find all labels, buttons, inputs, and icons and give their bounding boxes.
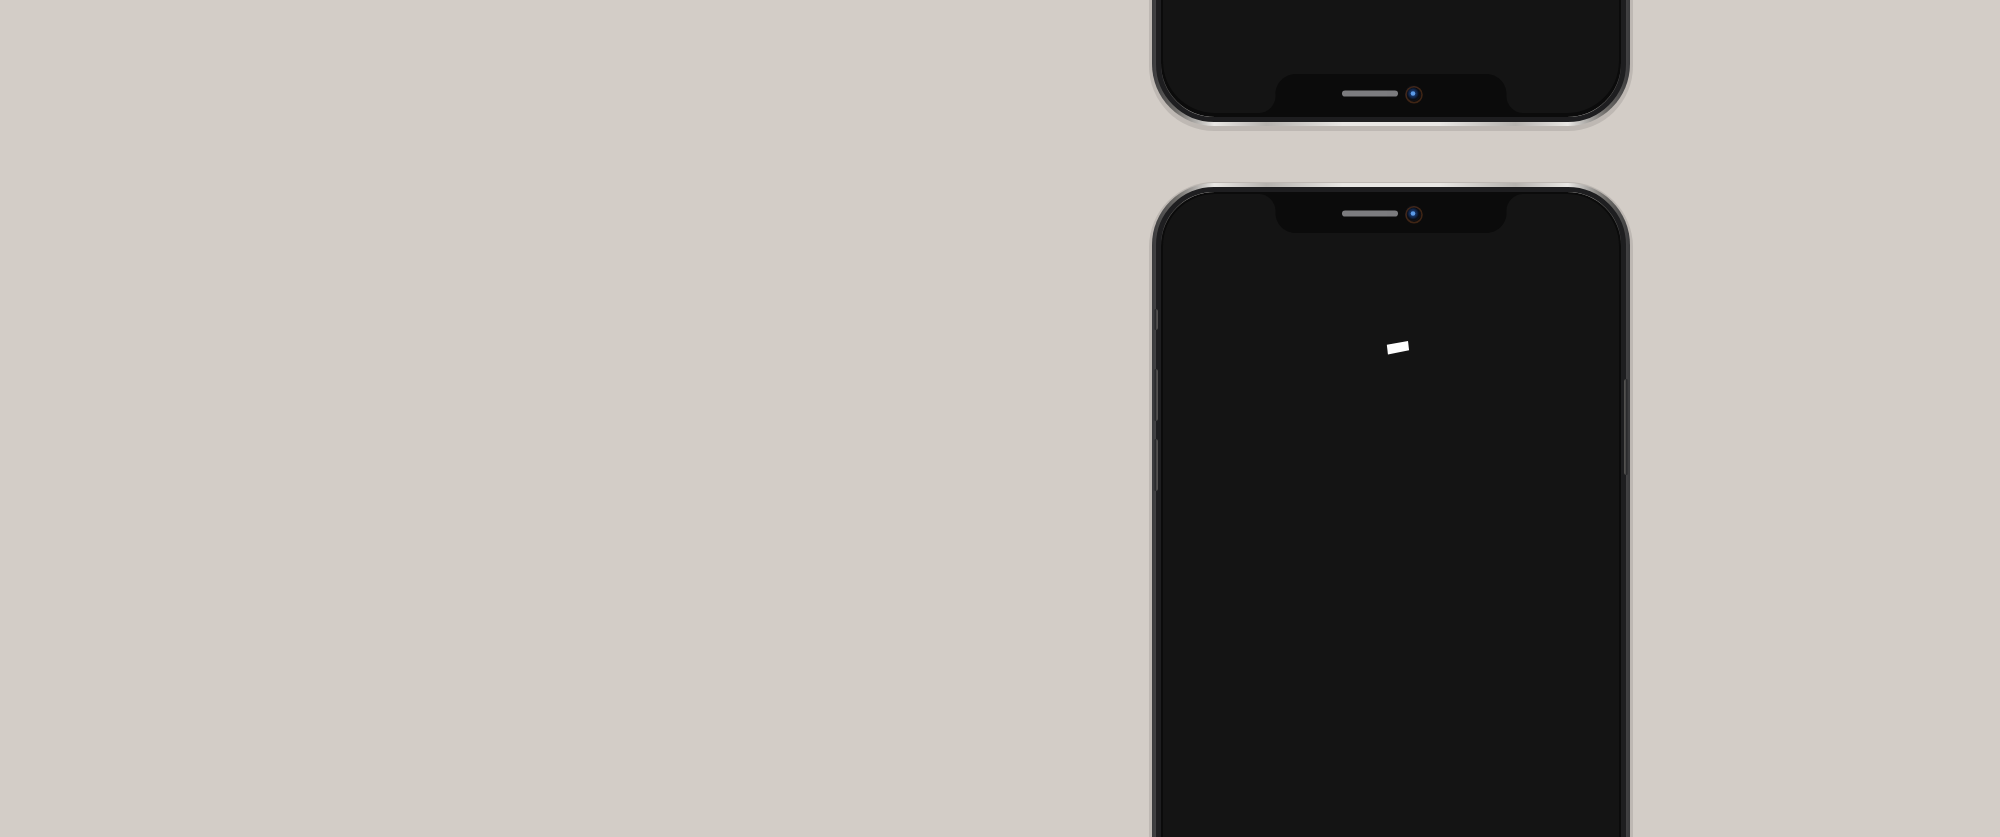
button[interactable]: Device screen preview (0, 0, 2000, 837)
